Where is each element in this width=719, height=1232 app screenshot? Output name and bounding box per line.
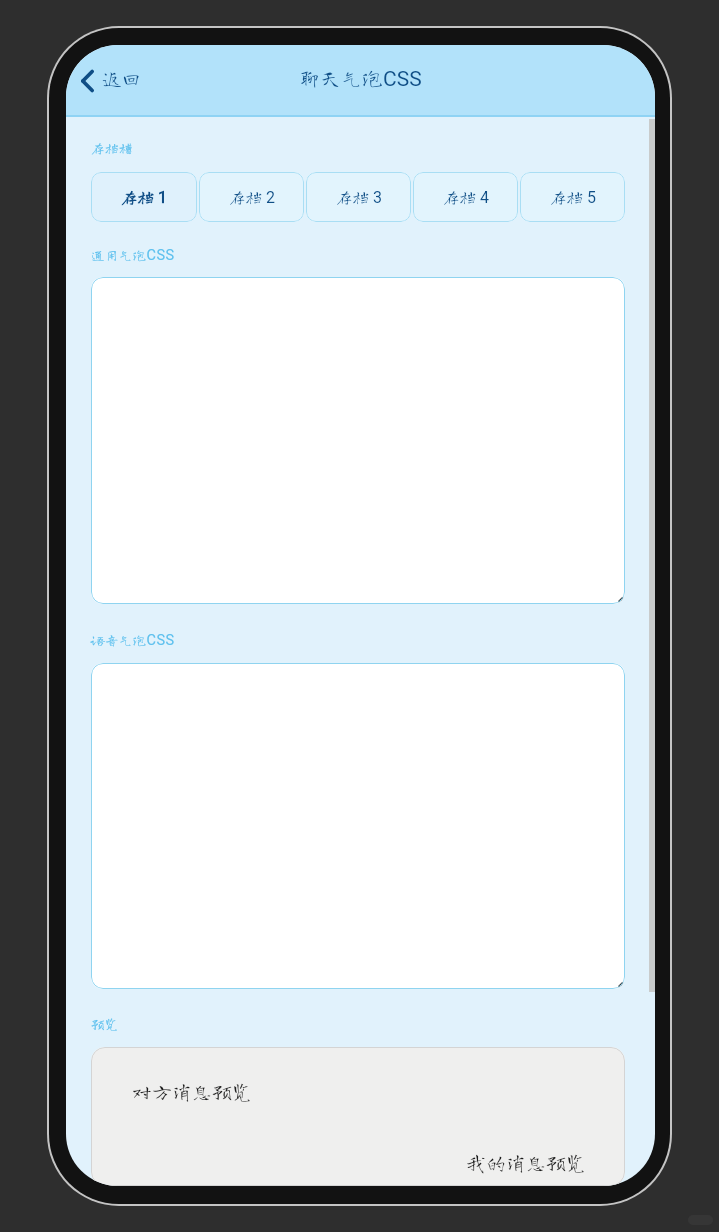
other: Back: [81, 70, 94, 92]
staticText: 存档 2: [229, 188, 275, 207]
button[interactable]: [91, 277, 625, 604]
staticText: 存档 3: [336, 188, 382, 207]
staticText: 通用气泡CSS: [91, 247, 175, 264]
button[interactable]: 存档 5: [520, 172, 625, 222]
staticText: 存档 1: [121, 188, 167, 207]
staticText: 存档 4: [443, 188, 489, 207]
staticText: 聊天气泡CSS: [299, 67, 422, 92]
button[interactable]: [91, 663, 625, 989]
button[interactable]: 存档 4: [413, 172, 518, 222]
staticText: 存档槽: [91, 141, 133, 155]
staticText: 对方消息预览: [132, 1081, 252, 1101]
staticText: 返回: [102, 69, 142, 88]
button[interactable]: Back: [73, 60, 150, 102]
staticText: 预览: [91, 1017, 119, 1031]
button[interactable]: 存档 2: [199, 172, 304, 222]
staticText: 我的消息预览: [466, 1152, 586, 1172]
button[interactable]: 存档 3: [306, 172, 411, 222]
staticText: 存档 5: [550, 188, 596, 207]
button[interactable]: 存档 1: [91, 172, 197, 222]
staticText: 语音气泡CSS: [91, 632, 175, 649]
